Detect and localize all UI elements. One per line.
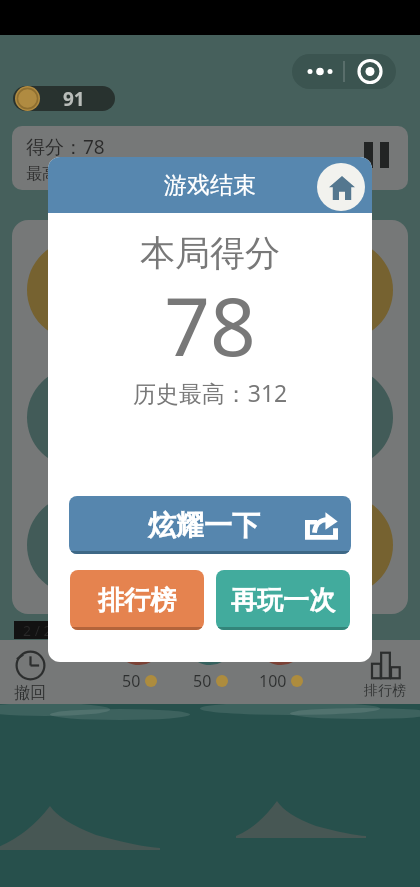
staticText: 得分：78: [26, 134, 105, 160]
button[interactable]: 100: [248, 640, 314, 704]
button[interactable]: Coins: [13, 86, 115, 111]
staticText: 2 / 2: [23, 621, 52, 639]
button[interactable]: 50: [177, 640, 243, 704]
staticText: 50: [122, 670, 141, 692]
button[interactable]: 排行榜: [70, 570, 204, 630]
staticText: 排行榜: [364, 682, 406, 700]
button[interactable]: 50: [106, 640, 172, 704]
staticText: 本局得分: [48, 231, 372, 275]
button[interactable]: Menu: [292, 54, 396, 89]
button[interactable]: Home: [317, 163, 365, 211]
staticText: 91: [63, 86, 85, 111]
button[interactable]: 炫耀一下: [69, 496, 351, 554]
staticText: 历史最高：312: [48, 377, 372, 408]
staticText: 排行榜: [98, 584, 176, 617]
staticText: 撤回: [14, 683, 46, 703]
staticText: 50: [193, 670, 212, 692]
staticText: 游戏结束: [164, 171, 256, 200]
staticText: 78: [48, 270, 372, 379]
button[interactable]: 撤回: [2, 640, 58, 704]
staticText: 100: [259, 670, 287, 692]
button[interactable]: Pause: [360, 139, 394, 173]
staticText: 炫耀一下: [148, 508, 260, 543]
staticText: 再玩一次: [231, 584, 335, 617]
button[interactable]: 再玩一次: [216, 570, 350, 630]
button[interactable]: 排行榜: [357, 640, 413, 704]
staticText: 最高：312: [26, 162, 102, 184]
